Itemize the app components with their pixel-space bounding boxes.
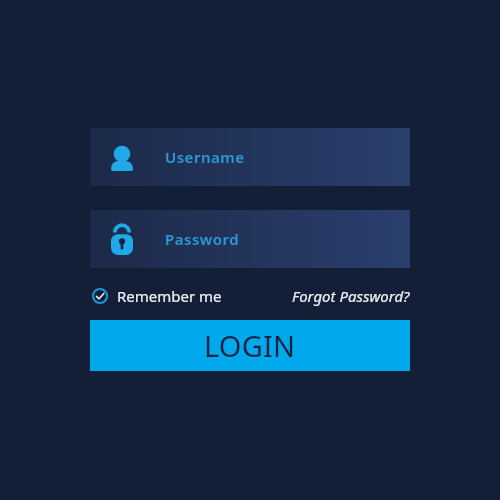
button[interactable]: Password [90,210,410,268]
button[interactable]: Remember me [90,286,222,306]
staticText: Remember me [117,286,222,306]
staticText: Username [165,147,245,167]
button[interactable]: LOGIN [90,320,410,371]
button[interactable]: Username [90,128,410,186]
staticText: Password [165,229,240,249]
staticText: LOGIN [204,326,296,365]
button[interactable]: Forgot Password? [292,286,410,306]
